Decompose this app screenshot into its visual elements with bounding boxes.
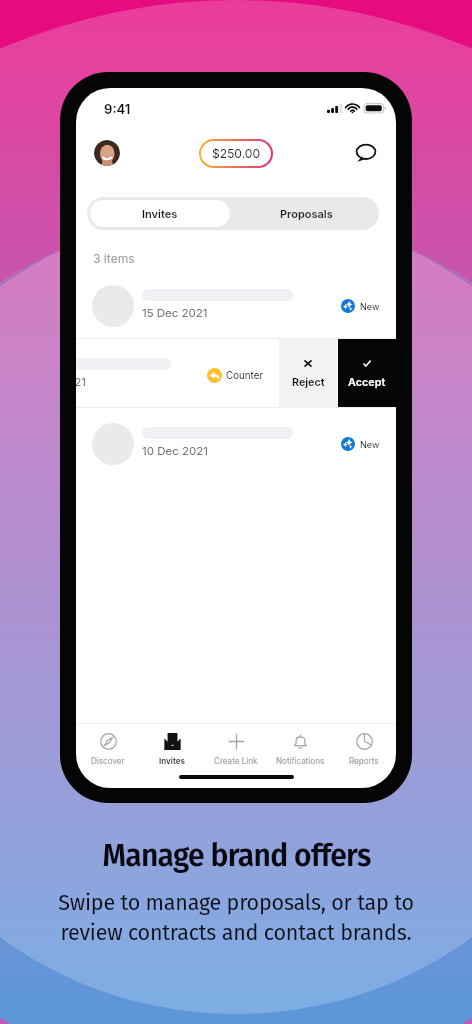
button[interactable]: Profile: [94, 140, 120, 166]
button[interactable]: Accept: [338, 339, 396, 407]
button[interactable]: Messages: [353, 140, 379, 166]
staticText: 3 items: [93, 251, 135, 266]
button[interactable]: Proposals: [233, 197, 379, 230]
staticText: Invites: [142, 207, 178, 220]
staticText: Discover: [91, 756, 125, 766]
staticText: 15 Dec 2021: [142, 306, 208, 320]
button[interactable]: Invites: [140, 724, 204, 776]
staticText: Create Link: [214, 756, 258, 766]
staticText: Notifications: [276, 756, 325, 766]
staticText: Reports: [349, 756, 379, 766]
staticText: 10 Dec 2021: [142, 444, 208, 458]
staticText: Manage brand offers: [102, 838, 371, 874]
staticText: Invites: [159, 756, 185, 766]
button[interactable]: Create Link: [204, 724, 268, 776]
staticText: 9:41: [104, 101, 131, 117]
button[interactable]: $250.00: [201, 141, 271, 166]
button[interactable]: Reject: [279, 339, 337, 407]
staticText: New: [360, 301, 380, 312]
button[interactable]: 10 Dec 2021: [76, 408, 396, 476]
button[interactable]: Notifications: [268, 724, 332, 776]
button[interactable]: 15 Dec 2021: [76, 270, 396, 338]
staticText: Proposals: [280, 207, 333, 220]
staticText: Swipe to manage proposals, or tap to rev…: [58, 890, 414, 946]
staticText: 10 Dec 2021: [76, 375, 86, 389]
button[interactable]: Invites: [90, 200, 230, 227]
staticText: Counter: [226, 370, 264, 382]
staticText: $250.00: [212, 146, 261, 161]
button[interactable]: Discover: [76, 724, 140, 776]
staticText: Reject: [292, 376, 325, 389]
button[interactable]: Counter: [207, 368, 264, 383]
button[interactable]: Reports: [332, 724, 396, 776]
staticText: New: [360, 439, 380, 450]
staticText: Accept: [348, 376, 386, 389]
